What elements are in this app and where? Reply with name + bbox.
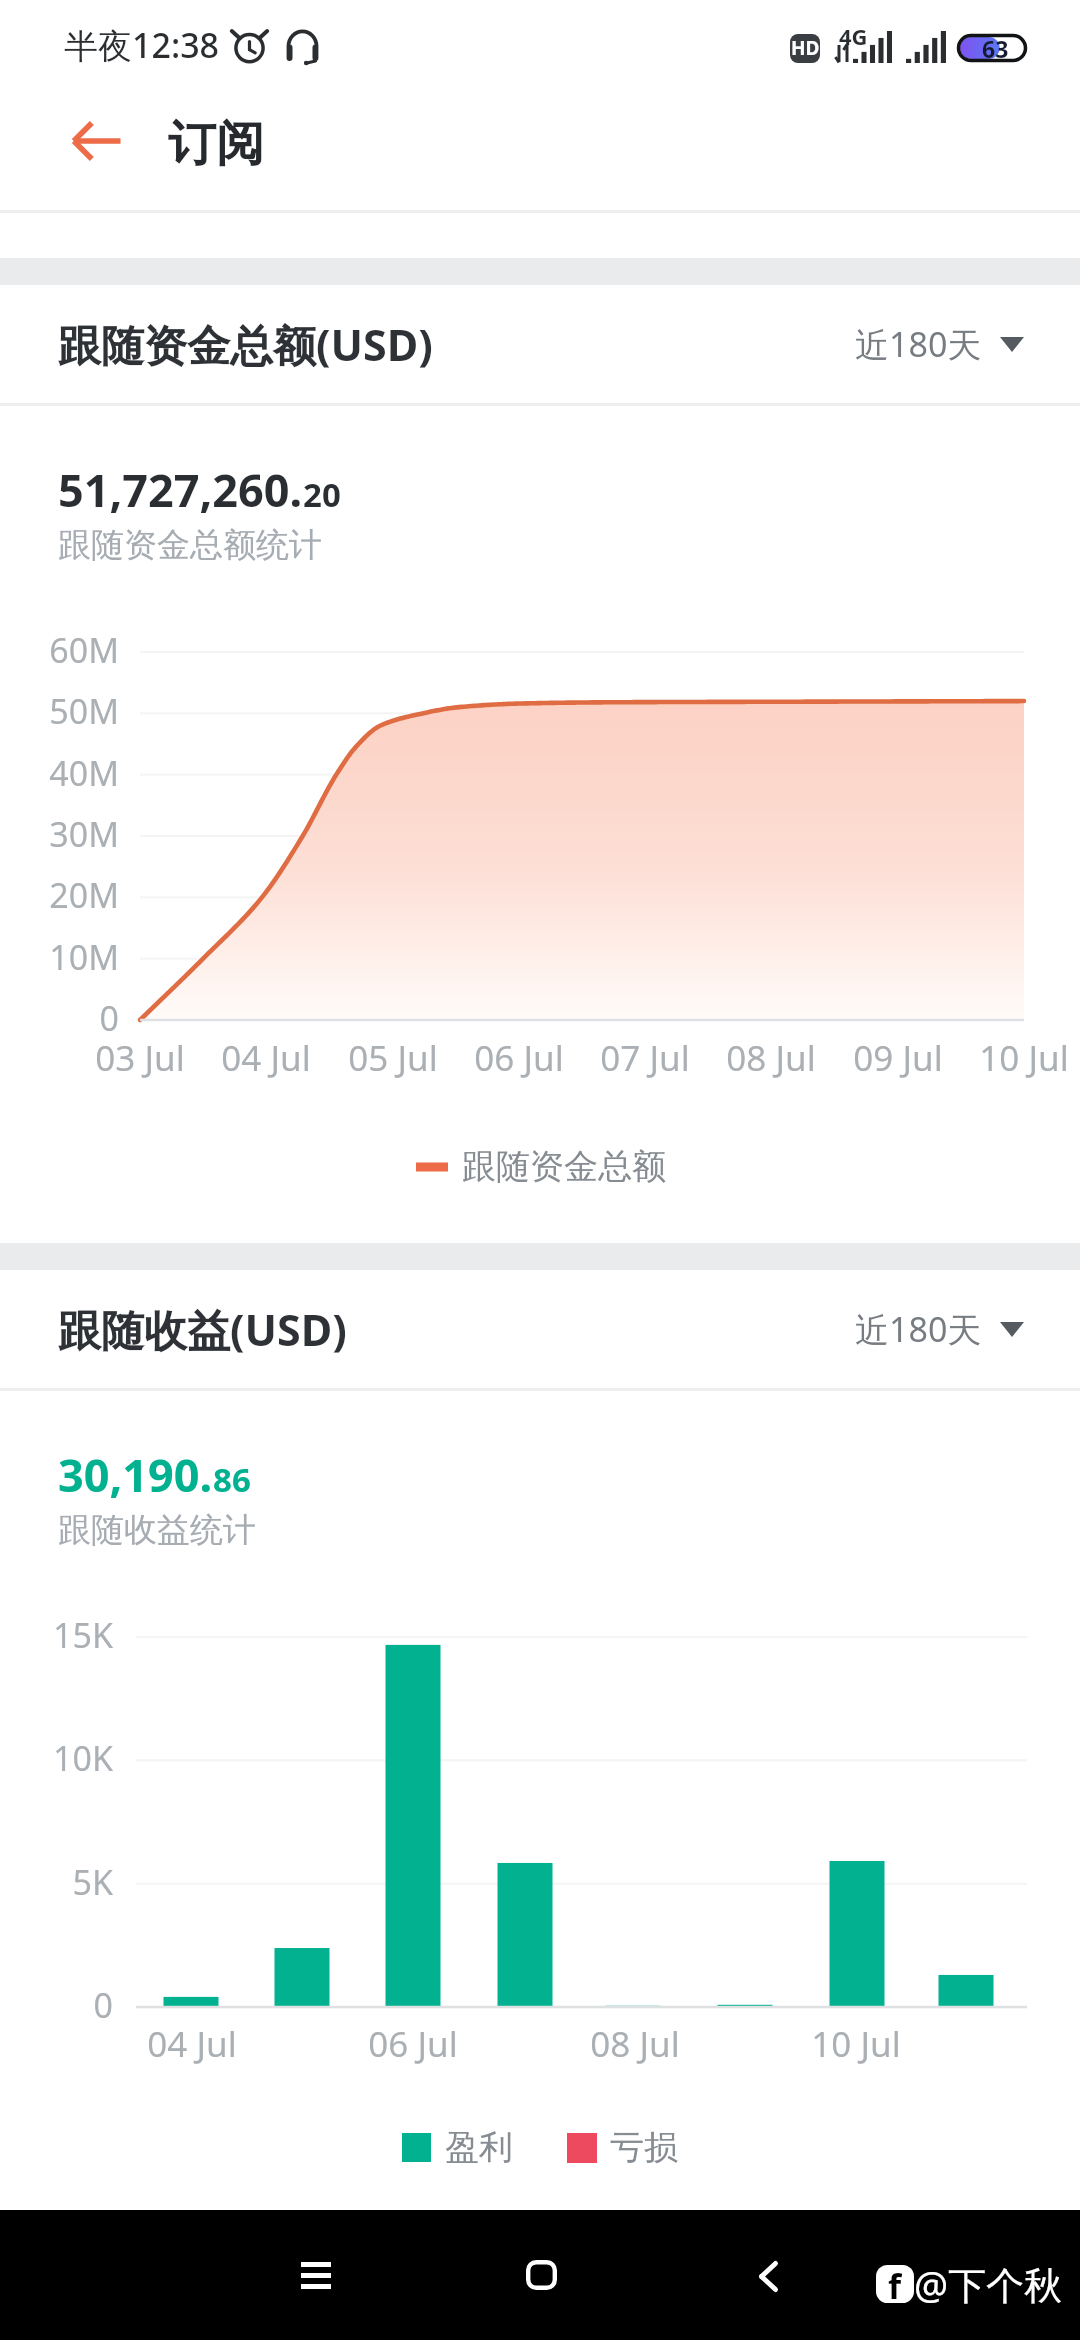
- staticText: 10 Jul: [776, 2020, 936, 2068]
- staticText: 04 Jul: [112, 2020, 272, 2068]
- button[interactable]: Home: [481, 2210, 601, 2340]
- button[interactable]: 近180天: [855, 1306, 1024, 1352]
- staticText: 30M: [0, 811, 119, 857]
- staticText: 跟随资金总额: [462, 1145, 666, 1188]
- button[interactable]: 近180天: [855, 321, 1024, 367]
- staticText: 40M: [0, 750, 119, 796]
- staticText: 20M: [0, 872, 119, 918]
- staticText: 10M: [0, 934, 119, 980]
- staticText: 09 Jul: [818, 1034, 978, 1082]
- staticText: 51,727,260.: [58, 459, 303, 520]
- staticText: 跟随收益统计: [58, 1509, 256, 1551]
- staticText: 0: [0, 995, 119, 1041]
- staticText: 08 Jul: [555, 2020, 715, 2068]
- staticText: 05 Jul: [313, 1034, 473, 1082]
- staticText: 订阅: [168, 114, 264, 174]
- staticText: 5K: [0, 1859, 113, 1905]
- staticText: 86: [213, 1457, 251, 1502]
- staticText: 15K: [0, 1612, 113, 1658]
- staticText: 0: [0, 1982, 113, 2028]
- staticText: 4G: [839, 21, 868, 51]
- button[interactable]: Recents: [256, 2210, 376, 2340]
- staticText: 08 Jul: [691, 1034, 851, 1082]
- staticText: 30,190.: [58, 1444, 213, 1505]
- staticText: 半夜12:38: [64, 22, 220, 68]
- staticText: f: [888, 2263, 902, 2301]
- staticText: 60M: [0, 627, 119, 673]
- staticText: 跟随资金总额统计: [58, 524, 322, 566]
- staticText: 亏损: [610, 2126, 678, 2169]
- staticText: 06 Jul: [439, 1034, 599, 1082]
- staticText: 03 Jul: [60, 1034, 220, 1082]
- staticText: 06 Jul: [333, 2020, 493, 2068]
- button[interactable]: Back: [52, 106, 140, 182]
- staticText: 盈利: [445, 2126, 513, 2169]
- staticText: 近180天: [855, 321, 982, 367]
- staticText: 63: [982, 33, 1009, 61]
- staticText: 跟随收益(USD): [58, 1300, 347, 1359]
- staticText: @下个秋: [914, 2258, 1063, 2310]
- staticText: 04 Jul: [186, 1034, 346, 1082]
- staticText: 20: [303, 472, 341, 517]
- button[interactable]: Back: [708, 2210, 828, 2340]
- staticText: 50M: [0, 688, 119, 734]
- staticText: 近180天: [855, 1306, 982, 1352]
- staticText: 10 Jul: [944, 1034, 1080, 1082]
- staticText: 10K: [0, 1735, 113, 1781]
- staticText: 跟随资金总额(USD): [58, 315, 433, 374]
- staticText: HD: [791, 35, 820, 61]
- staticText: 07 Jul: [565, 1034, 725, 1082]
